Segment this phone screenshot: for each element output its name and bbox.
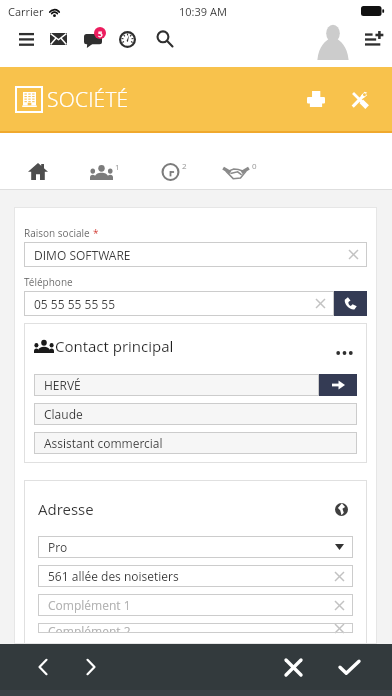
button[interactable]: Contacts	[80, 133, 133, 189]
button[interactable]: Profile	[314, 22, 352, 67]
button[interactable]: Map	[329, 499, 353, 519]
staticText: Raison sociale	[24, 226, 90, 240]
button[interactable]: History	[151, 133, 200, 189]
button[interactable]: Validate	[332, 650, 366, 684]
button[interactable]: Cancel	[276, 650, 310, 684]
staticText: Adresse	[38, 499, 94, 519]
staticText: *	[93, 226, 99, 240]
staticText: Assistant commercial	[44, 435, 163, 451]
staticText: Claude	[44, 406, 83, 422]
button[interactable]: Call	[334, 291, 367, 316]
staticText: Téléphone	[24, 275, 73, 289]
staticText: 05 55 55 55 55	[34, 296, 116, 312]
button[interactable]: Mail	[46, 27, 71, 51]
staticText: DIMO SOFTWARE	[34, 247, 131, 263]
staticText: 2	[182, 160, 187, 171]
staticText: 0	[252, 160, 257, 171]
staticText: 10:39 AM	[179, 4, 227, 19]
staticText: SOCIÉTÉ	[47, 85, 129, 114]
button[interactable]: Menu	[14, 27, 39, 51]
button[interactable]: Next	[74, 650, 108, 684]
button[interactable]: Search	[151, 25, 177, 51]
button[interactable]: More options	[331, 343, 357, 363]
button[interactable]: Home	[18, 133, 68, 189]
staticText: Pro	[48, 539, 68, 555]
button[interactable]: Add to list	[361, 26, 387, 52]
button[interactable]: Tools	[346, 86, 372, 112]
button[interactable]: Messages	[82, 25, 108, 51]
button[interactable]: Open contact	[319, 374, 357, 396]
button[interactable]: Print	[303, 86, 329, 112]
button[interactable]: Deals	[212, 133, 270, 189]
staticText: Carrier	[8, 4, 44, 19]
staticText: Contact principal	[55, 336, 174, 356]
staticText: 5	[98, 28, 103, 39]
staticText: Complément 2	[48, 623, 131, 633]
staticText: 561 allée des noisetiers	[48, 568, 179, 584]
staticText: Complément 1	[48, 597, 131, 613]
button[interactable]: Previous	[26, 650, 60, 684]
button[interactable]: Dashboard	[114, 26, 140, 52]
staticText: HERVÉ	[44, 377, 81, 393]
staticText: 1	[115, 161, 120, 172]
